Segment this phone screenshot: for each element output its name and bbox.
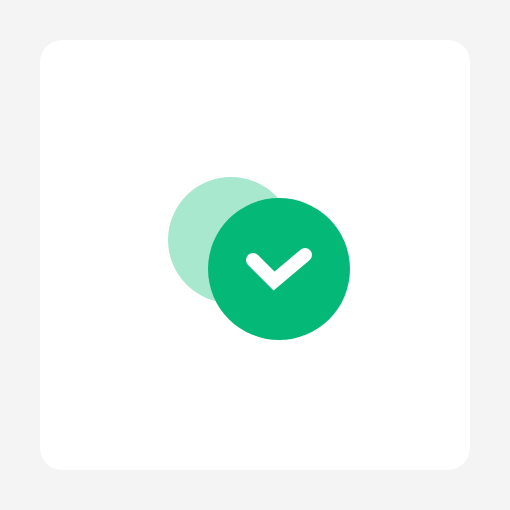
other: Confirmed: [40, 40, 470, 470]
button[interactable]: Success card: [40, 40, 470, 470]
